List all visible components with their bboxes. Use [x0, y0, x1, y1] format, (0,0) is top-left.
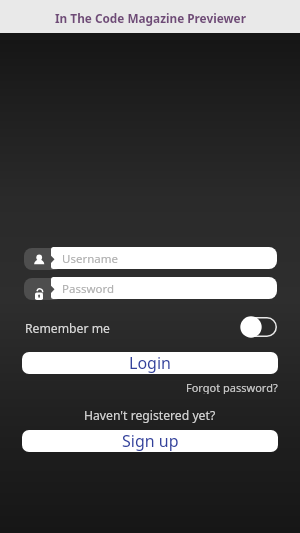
staticText: Remember me [25, 320, 110, 337]
button[interactable]: Login [22, 352, 278, 374]
staticText: Password [62, 281, 115, 297]
button[interactable]: Username [51, 247, 277, 269]
button[interactable] [238, 315, 280, 339]
staticText: Username [62, 251, 118, 267]
staticText: Haven't registered yet? [84, 407, 216, 423]
button[interactable]: Forgot password? [178, 380, 278, 394]
staticText: Login [129, 352, 171, 374]
button[interactable]: Sign up [22, 430, 278, 452]
button[interactable]: Password [51, 277, 277, 299]
staticText: In The Code Magazine Previewer [55, 10, 246, 26]
staticText: Forgot password? [186, 380, 278, 394]
staticText: Sign up [122, 430, 179, 452]
